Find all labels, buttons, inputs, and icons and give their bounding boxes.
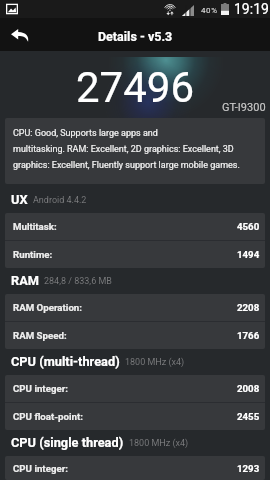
staticText: 1800 MHz (x4) <box>125 357 185 368</box>
staticText: 2208 <box>237 302 260 313</box>
staticText: 284,8 / 833,6 MB <box>44 276 112 287</box>
staticText: RAM Speed: <box>13 330 67 341</box>
staticText: 2455 <box>237 411 260 422</box>
staticText: Multitask: <box>13 221 57 232</box>
button[interactable]: RAM Speed: <box>5 322 265 349</box>
staticText: 1494 <box>237 249 260 260</box>
staticText: Runtime: <box>13 249 53 260</box>
button[interactable]: RAM Operation: <box>5 294 265 321</box>
staticText: 1293 <box>237 463 260 474</box>
staticText: CPU float-point: <box>13 411 83 422</box>
button[interactable]: Multitask: <box>5 213 265 240</box>
button[interactable]: Runtime: <box>5 241 265 268</box>
staticText: CPU integer: <box>13 383 68 394</box>
staticText: 27496 <box>76 63 195 112</box>
staticText: RAM <box>11 273 39 288</box>
staticText: 19:19 <box>234 1 269 17</box>
staticText: CPU (single thread) <box>11 435 124 450</box>
staticText: 4560 <box>237 221 260 232</box>
staticText: CPU integer: <box>13 463 68 474</box>
staticText: CPU (multi-thread) <box>11 354 120 369</box>
staticText: RAM Operation: <box>13 302 83 313</box>
staticText: 40% <box>201 6 218 15</box>
button[interactable]: CPU integer: <box>5 375 265 402</box>
staticText: 1766 <box>237 330 260 341</box>
staticText: CPU: Good, Supports large apps and multi… <box>13 128 240 171</box>
staticText: GT-I9300 <box>222 101 266 114</box>
staticText: Details - v5.3 <box>98 29 173 44</box>
staticText: Android 4.4.2 <box>33 195 87 206</box>
staticText: UX <box>11 192 28 207</box>
staticText: 1800 MHz (x4) <box>129 438 189 449</box>
staticText: 2008 <box>237 383 260 394</box>
button[interactable]: CPU integer: <box>5 456 265 480</box>
button[interactable]: CPU float-point: <box>5 403 265 430</box>
button[interactable]: Back <box>0 18 40 51</box>
